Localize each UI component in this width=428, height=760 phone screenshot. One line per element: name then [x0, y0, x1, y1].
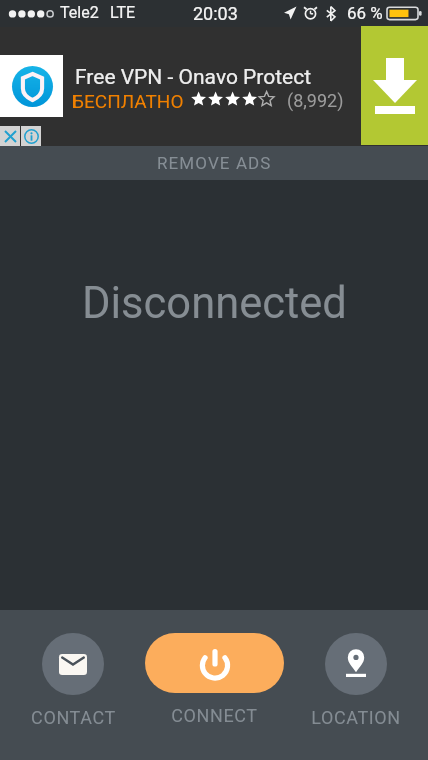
button[interactable]: Ad info: [21, 126, 41, 146]
button[interactable]: LOCATION: [286, 633, 426, 728]
staticText: 66 %: [347, 3, 383, 23]
staticText: БЕСПЛАТНО: [72, 90, 184, 112]
staticText: CONTACT: [31, 707, 116, 728]
staticText: CONNECT: [171, 705, 258, 726]
staticText: Disconnected: [82, 278, 347, 329]
button[interactable]: Install: [361, 26, 428, 145]
button[interactable]: REMOVE ADS: [0, 146, 428, 180]
staticText: LOCATION: [311, 707, 401, 728]
button[interactable]: CONTACT: [3, 633, 143, 728]
staticText: Tele2: [60, 3, 99, 22]
staticText: Free VPN - Onavo Protect: [75, 65, 312, 90]
staticText: 20:03: [193, 3, 238, 24]
staticText: REMOVE ADS: [157, 153, 272, 173]
staticText: (8,992): [287, 90, 344, 111]
button[interactable]: Close ad: [0, 126, 20, 146]
button[interactable]: CONNECT: [145, 633, 284, 726]
staticText: LTE: [110, 3, 136, 22]
